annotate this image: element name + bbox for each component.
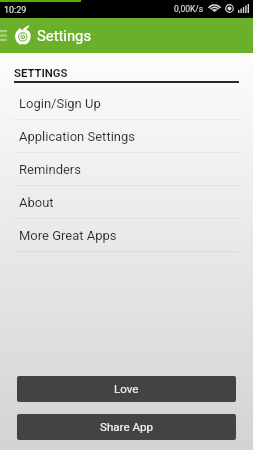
button[interactable]: About xyxy=(0,186,253,219)
staticText: Love xyxy=(114,382,139,396)
button[interactable]: Love xyxy=(17,376,236,402)
button[interactable]: Application Settings xyxy=(0,120,253,153)
staticText: Application Settings xyxy=(19,129,135,144)
button[interactable]: Reminders xyxy=(0,153,253,186)
button[interactable]: Open navigation drawer xyxy=(0,19,14,53)
staticText: Share App xyxy=(100,420,154,434)
staticText: More Great Apps xyxy=(19,228,117,243)
button[interactable]: Login/Sign Up xyxy=(0,83,253,120)
staticText: Reminders xyxy=(19,162,81,177)
staticText: Settings xyxy=(37,27,92,44)
staticText: 0,00K/s xyxy=(174,4,204,14)
button[interactable]: More Great Apps xyxy=(0,219,253,252)
staticText: About xyxy=(19,195,54,210)
staticText: Login/Sign Up xyxy=(19,96,101,111)
staticText: SETTINGS xyxy=(14,67,68,80)
staticText: 10:29 xyxy=(4,5,27,16)
button[interactable]: Share App xyxy=(17,414,236,440)
